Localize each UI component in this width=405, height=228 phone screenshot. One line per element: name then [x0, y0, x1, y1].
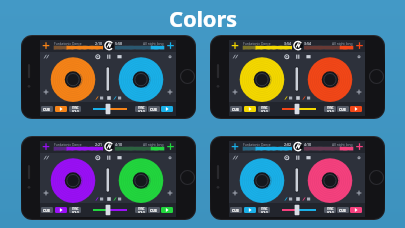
button[interactable]	[40, 40, 176, 116]
staticText: CUE	[150, 107, 158, 112]
staticText: 2:21	[95, 142, 103, 147]
staticText: CUE	[43, 208, 51, 213]
staticText: 2:02	[284, 142, 292, 147]
staticText: SOLO	[138, 211, 145, 213]
button[interactable]: SYNC	[135, 106, 147, 112]
button[interactable]: Play	[244, 106, 256, 112]
staticText: SYNC	[72, 106, 79, 110]
button[interactable]: SYNC	[258, 207, 270, 213]
button[interactable]	[229, 141, 365, 217]
staticText: SOLO	[327, 110, 334, 112]
staticText: 3:54	[284, 41, 292, 46]
staticText: 5:58	[115, 41, 123, 46]
staticText: SOLO	[327, 211, 334, 213]
staticText: 4:10	[115, 142, 123, 147]
button[interactable]: Play	[244, 207, 256, 213]
button[interactable]	[40, 141, 176, 217]
staticText: CUE	[339, 208, 347, 213]
staticText: SYNC	[327, 106, 334, 110]
staticText: SOLO	[261, 110, 268, 112]
button[interactable]: SYNC	[69, 106, 81, 112]
button[interactable]: CUE	[337, 207, 349, 213]
button[interactable]: CUE	[41, 106, 53, 112]
button[interactable]: SYNC	[258, 106, 270, 112]
staticText: SYNC	[138, 106, 145, 110]
button[interactable]: Play	[350, 207, 362, 213]
staticText: CUE	[339, 107, 347, 112]
staticText: SOLO	[72, 110, 79, 112]
button[interactable]: Play	[55, 106, 67, 112]
staticText: SYNC	[261, 207, 268, 211]
staticText: SYNC	[327, 207, 334, 211]
staticText: Funkatonic Dance	[54, 41, 82, 45]
staticText: SOLO	[138, 110, 145, 112]
staticText: 3:54	[304, 41, 312, 46]
staticText: Funkatonic Dance	[243, 142, 271, 146]
staticText: Colors	[169, 3, 237, 33]
staticText: SYNC	[72, 207, 79, 211]
button[interactable]: CUE	[41, 207, 53, 213]
button[interactable]: CUE	[230, 207, 242, 213]
staticText: All night long	[332, 41, 353, 45]
staticText: All night long	[143, 142, 164, 146]
button[interactable]	[229, 40, 365, 116]
button[interactable]: Play	[350, 106, 362, 112]
staticText: CUE	[232, 107, 240, 112]
staticText: SOLO	[72, 211, 79, 213]
button[interactable]: SYNC	[324, 106, 336, 112]
staticText: SYNC	[261, 106, 268, 110]
button[interactable]: CUE	[148, 207, 160, 213]
button[interactable]: SYNC	[69, 207, 81, 213]
staticText: 4:10	[304, 142, 312, 147]
button[interactable]: Play	[161, 106, 173, 112]
button[interactable]: Play	[55, 207, 67, 213]
button[interactable]: CUE	[148, 106, 160, 112]
staticText: CUE	[232, 208, 240, 213]
button[interactable]: SYNC	[135, 207, 147, 213]
staticText: CUE	[43, 107, 51, 112]
staticText: SYNC	[138, 207, 145, 211]
staticText: SOLO	[261, 211, 268, 213]
button[interactable]: Play	[161, 207, 173, 213]
staticText: CUE	[150, 208, 158, 213]
button[interactable]: CUE	[230, 106, 242, 112]
button[interactable]: CUE	[337, 106, 349, 112]
staticText: Funkatonic Dance	[54, 142, 82, 146]
button[interactable]: SYNC	[324, 207, 336, 213]
staticText: All night long	[332, 142, 353, 146]
staticText: 2:10	[95, 41, 103, 46]
staticText: All night long	[143, 41, 164, 45]
staticText: Funkatonic Dance	[243, 41, 271, 45]
